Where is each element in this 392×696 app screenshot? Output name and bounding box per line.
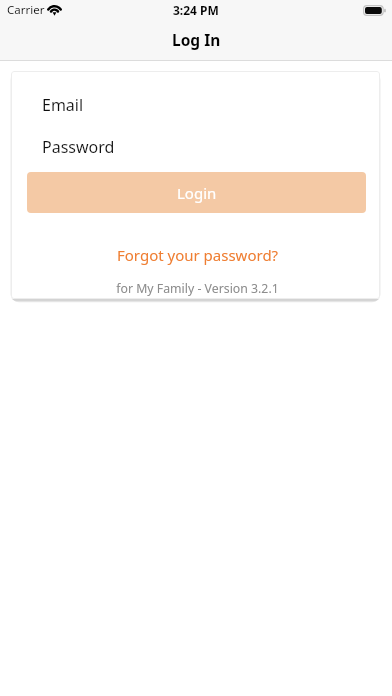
button[interactable]: Password bbox=[11, 132, 380, 162]
button[interactable]: Email bbox=[11, 90, 380, 120]
button[interactable]: Forgot your password? bbox=[107, 239, 289, 271]
button[interactable]: Login bbox=[27, 172, 366, 213]
staticText: Password bbox=[42, 136, 115, 158]
staticText: Carrier bbox=[7, 2, 45, 18]
staticText: Login bbox=[177, 183, 217, 203]
staticText: Forgot your password? bbox=[117, 245, 279, 265]
staticText: for My Family - Version 3.2.1 bbox=[13, 280, 380, 297]
other: Wi-Fi signal bbox=[47, 5, 62, 16]
staticText: Email bbox=[42, 94, 84, 116]
other: Battery full bbox=[363, 5, 386, 16]
staticText: 3:24 PM bbox=[173, 2, 219, 18]
staticText: Log In bbox=[172, 29, 221, 50]
